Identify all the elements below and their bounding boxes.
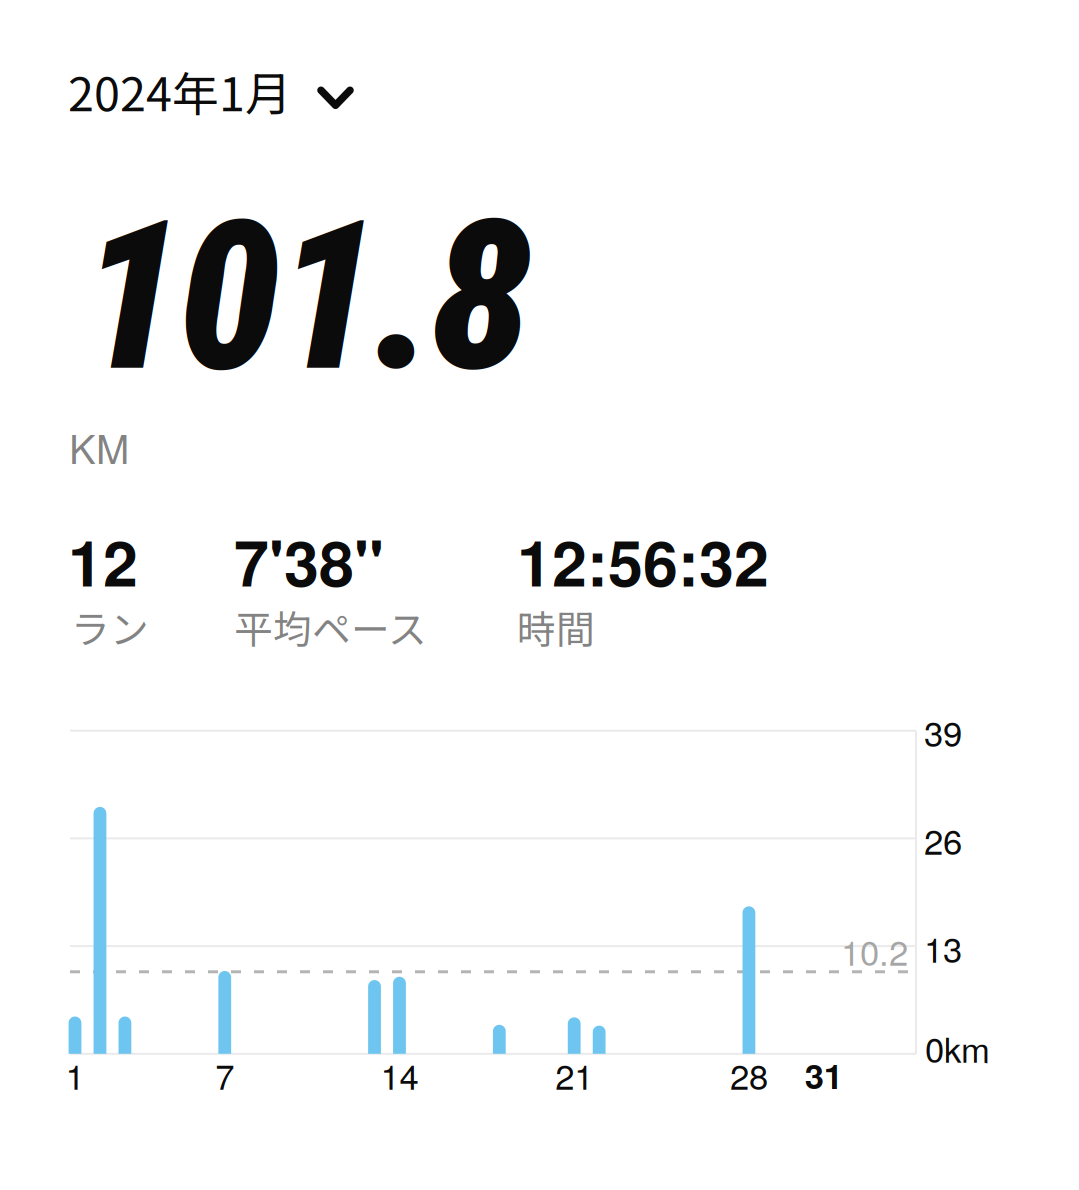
- staticText: 13: [924, 923, 962, 973]
- staticText: 7'38'': [234, 516, 384, 606]
- staticText: 時間: [517, 599, 595, 655]
- staticText: 2024年1月: [68, 57, 292, 125]
- staticText: 12: [68, 516, 138, 606]
- staticText: 101.8: [80, 176, 533, 418]
- staticText: 7: [215, 1050, 234, 1100]
- staticText: 10.2: [841, 926, 908, 976]
- staticText: 26: [924, 815, 962, 865]
- staticText: 14: [380, 1050, 418, 1100]
- staticText: 39: [924, 707, 962, 757]
- button[interactable]: 2024年1月: [68, 57, 354, 125]
- staticText: 1: [65, 1050, 84, 1100]
- staticText: 12:56:32: [517, 516, 769, 606]
- staticText: 平均ペース: [234, 599, 427, 655]
- staticText: 28: [730, 1050, 768, 1100]
- staticText: 21: [555, 1050, 593, 1100]
- staticText: KM: [69, 418, 129, 475]
- staticText: 31: [805, 1050, 843, 1100]
- staticText: ラン: [71, 599, 149, 655]
- staticText: 0km: [925, 1023, 990, 1073]
